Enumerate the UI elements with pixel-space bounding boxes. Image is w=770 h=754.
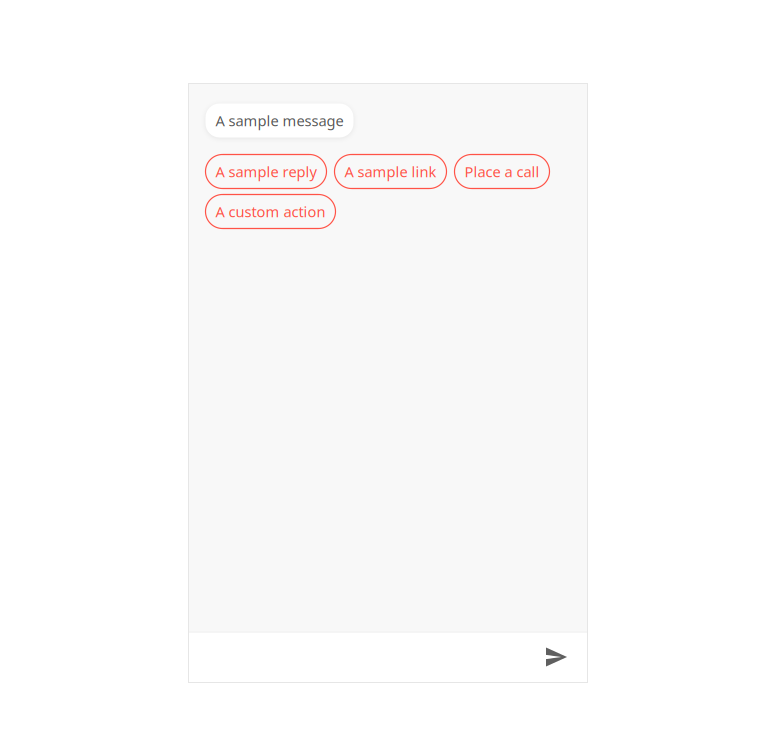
button[interactable]: A sample link [334, 154, 446, 188]
staticText: Place a call [464, 162, 539, 181]
button[interactable]: A sample reply [205, 154, 326, 188]
staticText: A sample message [215, 111, 343, 130]
staticText: A sample link [344, 162, 436, 181]
staticText: A sample reply [215, 162, 316, 181]
button[interactable]: A custom action [205, 194, 335, 228]
button[interactable]: Send [535, 631, 577, 682]
staticText: A custom action [215, 202, 325, 221]
button[interactable]: Place a call [454, 154, 549, 188]
